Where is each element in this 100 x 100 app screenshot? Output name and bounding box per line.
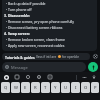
staticText: Message: [11, 65, 28, 70]
button[interactable]: Settings: [24, 73, 32, 81]
button[interactable]: P: [91, 82, 99, 93]
staticText: T: [44, 85, 47, 91]
staticText: 4.: [4, 31, 8, 36]
staticText: 3.: [4, 13, 8, 18]
staticText: (less if int) are: [36, 55, 57, 59]
button[interactable]: Clipboard: [13, 73, 21, 81]
staticText: R: [34, 85, 37, 91]
button[interactable]: E: [21, 82, 30, 93]
button[interactable]: W: [11, 82, 20, 93]
staticText: Remove broken screen, clean frame: [8, 37, 65, 42]
staticText: Remove screws, pry open phone carefully: [8, 19, 74, 24]
button[interactable]: Stickers: [35, 73, 43, 81]
staticText: U: [64, 85, 68, 91]
staticText: O: [84, 85, 88, 91]
staticText: Disassemble:: [8, 13, 31, 18]
button[interactable]: T: [41, 82, 50, 93]
button[interactable]: Hide keyboard: [90, 73, 98, 81]
staticText: E: [24, 85, 27, 91]
button[interactable]: Translate: [46, 73, 54, 81]
button[interactable]: R: [31, 82, 40, 93]
button[interactable]: Dismiss suggestion: [92, 53, 98, 59]
staticText: for openble: [62, 55, 79, 59]
button[interactable]: Voice input: [88, 62, 98, 72]
staticText: Swap screen:: [8, 31, 30, 36]
button[interactable]: Tutorials & guides: [2, 53, 90, 60]
button[interactable]: Back up data if possible: [2, 0, 97, 51]
staticText: W: [14, 85, 18, 91]
button[interactable]: More options: [80, 73, 88, 81]
staticText: Q: [4, 85, 8, 91]
staticText: Disconnect battery screen ribbons: [8, 25, 63, 30]
button[interactable]: Q: [1, 82, 10, 93]
staticText: Back up data if possible: [8, 1, 46, 6]
button[interactable]: I: [71, 82, 80, 93]
staticText: Turn phone off: [8, 7, 32, 12]
staticText: Y: [54, 85, 57, 91]
button[interactable]: U: [61, 82, 70, 93]
staticText: Apply new screen, reconnect cables: [8, 43, 65, 48]
staticText: Tutorials & guides: [5, 55, 35, 59]
staticText: P: [94, 85, 97, 91]
staticText: I: [75, 85, 77, 91]
button[interactable]: Y: [51, 82, 60, 93]
button[interactable]: Assistant: [2, 73, 10, 81]
button[interactable]: O: [81, 82, 90, 93]
button[interactable]: Message: [2, 62, 86, 72]
